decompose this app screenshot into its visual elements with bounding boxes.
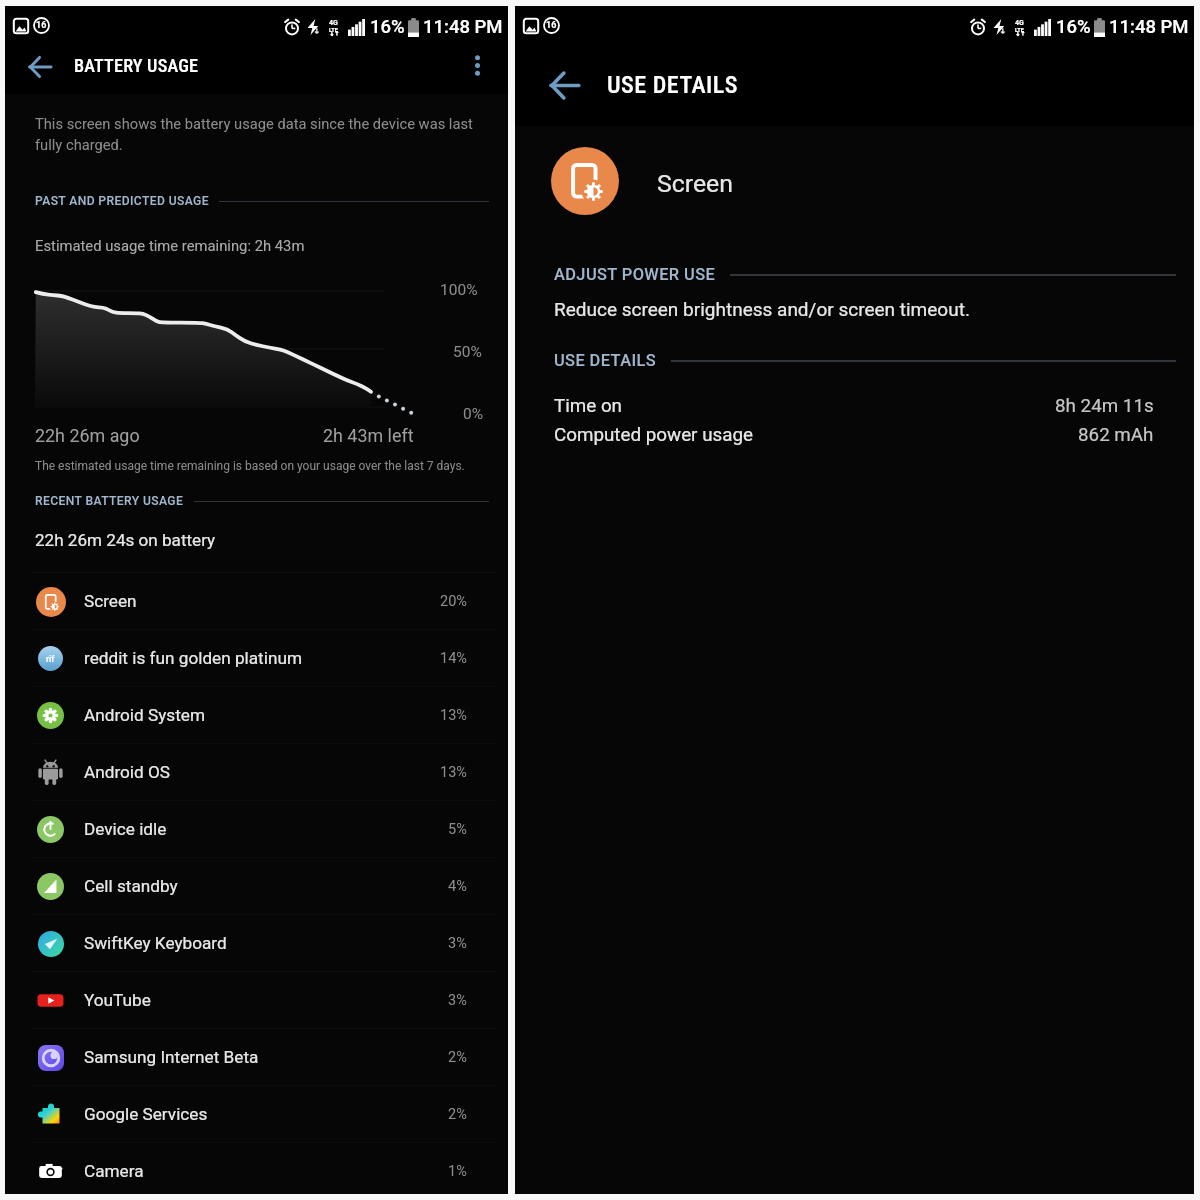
staticText: 16 [546,20,557,31]
button[interactable]: Back [545,66,583,104]
staticText: BATTERY USAGE [74,55,199,76]
button[interactable]: Screen [5,573,508,629]
staticText: PAST AND PREDICTED USAGE [35,194,209,208]
staticText: USE DETAILS [607,71,739,99]
staticText: 5% [448,821,467,838]
button[interactable]: Device idle [5,801,508,857]
staticText: reddit is fun golden platinum [84,648,302,668]
button[interactable]: More options [461,49,493,81]
staticText: 100% [440,281,478,299]
staticText: rif [46,654,55,664]
button[interactable]: Cell standby [5,858,508,914]
staticText: YouTube [84,990,151,1010]
staticText: 50% [453,343,482,361]
staticText: 2h 43m left [323,425,414,446]
button[interactable]: Camera [5,1143,508,1199]
staticText: 16% [1056,16,1091,38]
button[interactable]: Android OS [5,744,508,800]
staticText: Android OS [84,762,171,782]
staticText: Device idle [84,819,167,839]
staticText: 16% [370,16,405,38]
staticText: Screen [657,169,733,198]
button[interactable]: rif [5,630,508,686]
staticText: LTE [1015,27,1024,33]
staticText: 11:48 PM [1109,16,1189,38]
staticText: 1% [448,1163,467,1180]
button[interactable]: SwiftKey Keyboard [5,915,508,971]
staticText: RECENT BATTERY USAGE [35,494,184,508]
staticText: 13% [440,764,467,781]
staticText: Camera [84,1161,144,1181]
staticText: 0% [463,405,484,423]
staticText: 16 [36,20,47,31]
staticText: 862 mAh [1078,424,1154,446]
staticText: 11:48 PM [423,16,503,38]
staticText: Screen [84,591,137,611]
button[interactable]: Back [26,53,54,81]
staticText: SwiftKey Keyboard [84,933,227,953]
button[interactable]: Google Services [5,1086,508,1142]
staticText: Google Services [84,1104,208,1124]
staticText: 13% [440,707,467,724]
button[interactable]: YouTube [5,972,508,1028]
staticText: 4G [329,19,338,27]
staticText: 4% [448,878,467,895]
button[interactable]: Samsung Internet Beta [5,1029,508,1085]
staticText: 2% [448,1049,467,1066]
staticText: The estimated usage time remaining is ba… [35,459,465,473]
staticText: LTE [329,27,338,33]
staticText: 3% [448,935,467,952]
staticText: Android System [84,705,206,725]
staticText: Estimated usage time remaining: 2h 43m [35,237,305,254]
staticText: Reduce screen brightness and/or screen t… [554,298,970,320]
staticText: Computed power usage [554,424,753,446]
staticText: Time on [554,395,623,417]
staticText: 22h 26m 24s on battery [35,530,216,550]
staticText: 8h 24m 11s [1055,395,1154,417]
staticText: Samsung Internet Beta [84,1047,259,1067]
staticText: 4G [1015,19,1024,27]
staticText: 22h 26m ago [35,425,140,446]
button[interactable]: Android System [5,687,508,743]
staticText: 2% [448,1106,467,1123]
staticText: ADJUST POWER USE [554,265,716,284]
staticText: 14% [440,650,467,667]
staticText: Cell standby [84,876,178,896]
staticText: USE DETAILS [554,351,657,370]
staticText: This screen shows the battery usage data… [35,115,473,154]
staticText: 20% [440,593,467,610]
staticText: 3% [448,992,467,1009]
